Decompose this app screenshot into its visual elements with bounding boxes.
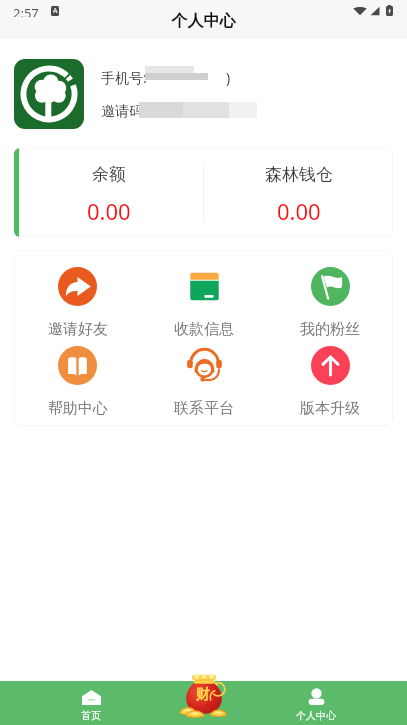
button[interactable]: Rewards xyxy=(178,670,230,717)
staticText: A xyxy=(53,6,58,16)
staticText: 帮助中心 xyxy=(48,399,108,418)
staticText: 2:57 xyxy=(13,4,39,17)
button[interactable]: 首页 xyxy=(0,681,182,725)
button[interactable]: 余额 xyxy=(14,148,203,237)
staticText: ) xyxy=(226,68,231,87)
staticText: 0.00 xyxy=(277,196,321,226)
staticText: 收款信息 xyxy=(174,320,234,339)
button[interactable]: 帮助中心 xyxy=(14,346,141,418)
staticText: 联系平台 xyxy=(174,399,234,418)
staticText: 手机号: xyxy=(101,68,147,87)
staticText: 个人中心 xyxy=(296,709,336,722)
staticText: 邀请码 xyxy=(101,103,143,121)
button[interactable]: 森林钱仓 xyxy=(204,148,393,237)
button[interactable]: 版本升级 xyxy=(267,346,393,418)
staticText: 版本升级 xyxy=(300,399,360,418)
staticText: 我的粉丝 xyxy=(300,320,360,339)
staticText: 财 xyxy=(196,686,210,704)
button[interactable]: Avatar xyxy=(14,59,84,129)
staticText: 余额 xyxy=(92,164,126,185)
button[interactable]: 邀请好友 xyxy=(14,267,141,339)
staticText: 邀请好友 xyxy=(48,320,108,339)
button[interactable]: 联系平台 xyxy=(141,346,267,418)
button[interactable]: 我的粉丝 xyxy=(267,267,393,339)
staticText: 0.00 xyxy=(87,196,131,226)
staticText: 森林钱仓 xyxy=(265,164,333,185)
button[interactable]: 收款信息 xyxy=(141,267,267,339)
button[interactable]: 个人中心 xyxy=(225,681,407,725)
staticText: 个人中心 xyxy=(0,11,407,31)
staticText: 首页 xyxy=(81,709,101,722)
